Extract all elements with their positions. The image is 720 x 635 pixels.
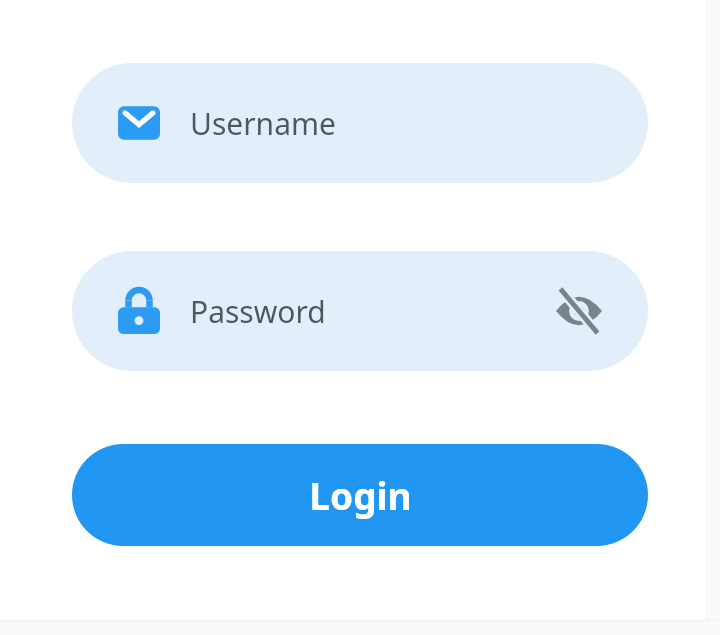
staticText: Password [190,291,326,332]
staticText: Username [190,103,336,144]
staticText: Login [309,470,412,520]
button[interactable]: Password [72,251,648,371]
button[interactable]: Show password [550,282,608,340]
button[interactable]: Login [72,444,648,546]
button[interactable]: Username [72,63,648,183]
